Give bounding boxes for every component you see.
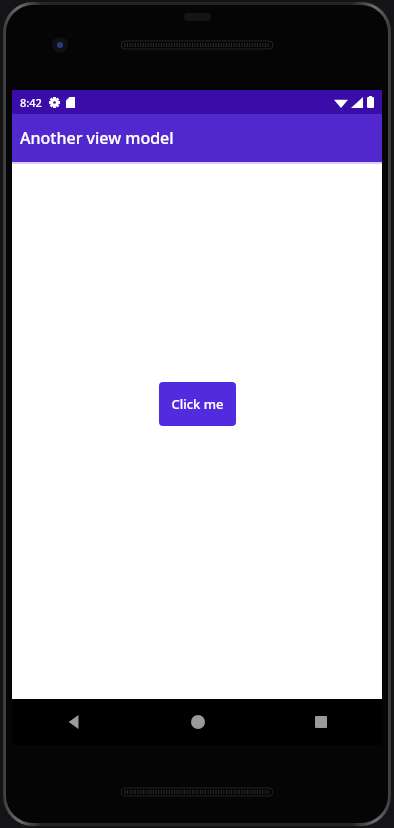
button[interactable]: Click me xyxy=(159,382,236,426)
staticText: Click me xyxy=(171,395,224,413)
staticText: Another view model xyxy=(20,127,174,149)
button[interactable]: Home xyxy=(136,699,259,745)
button[interactable]: Back xyxy=(12,699,136,745)
staticText: 8:42 xyxy=(20,95,42,110)
button[interactable]: Recent apps xyxy=(259,699,382,745)
